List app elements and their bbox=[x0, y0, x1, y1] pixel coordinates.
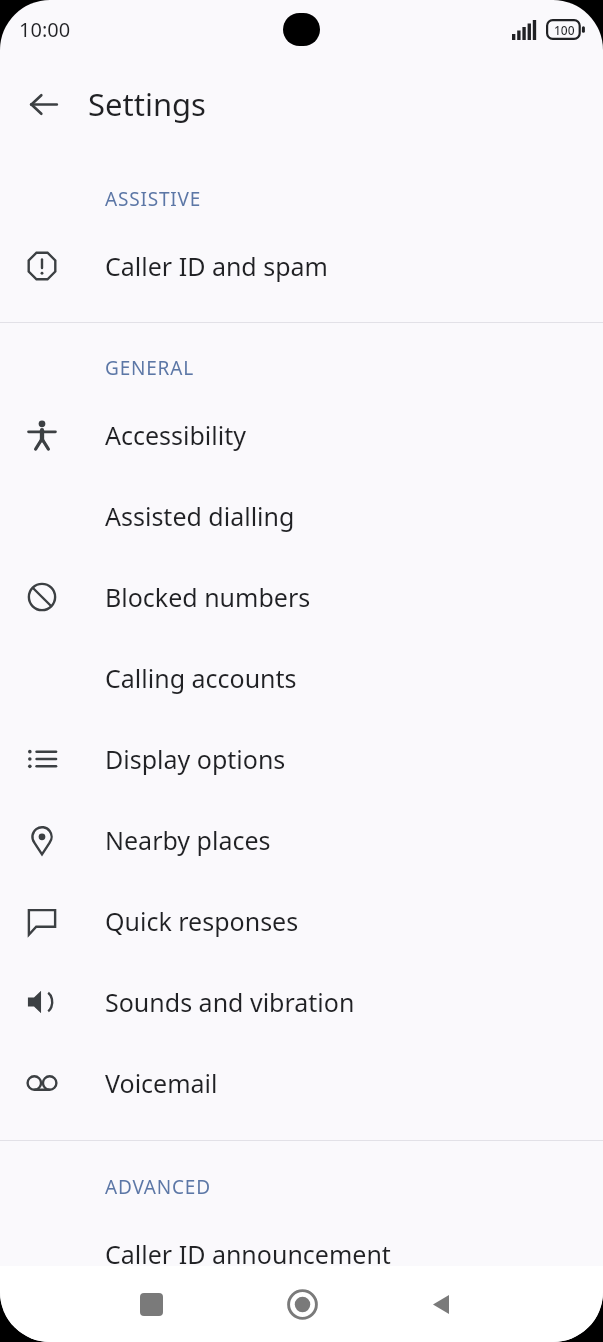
button[interactable]: Assisted dialling bbox=[0, 475, 603, 556]
button[interactable]: Recent apps bbox=[126, 1279, 176, 1329]
staticText: Nearby places bbox=[105, 823, 271, 857]
staticText: Flip to silence bbox=[105, 1277, 264, 1311]
staticText: Sounds and vibration bbox=[105, 985, 355, 1019]
staticText: Assisted dialling bbox=[105, 499, 295, 533]
staticText: Settings bbox=[88, 83, 206, 125]
staticText: Calling accounts bbox=[105, 661, 297, 695]
staticText: Voicemail bbox=[105, 1066, 218, 1100]
staticText: GENERAL bbox=[105, 355, 194, 381]
button[interactable]: Back bbox=[17, 78, 69, 130]
staticText: Blocked numbers bbox=[105, 580, 311, 614]
staticText: ADVANCED bbox=[105, 1174, 211, 1200]
button[interactable]: Calling accounts bbox=[0, 637, 603, 718]
button[interactable]: Blocked numbers bbox=[0, 556, 603, 637]
staticText: Quick responses bbox=[105, 904, 299, 938]
staticText: 10:00 bbox=[19, 16, 71, 43]
staticText: 100 bbox=[554, 22, 575, 38]
staticText: Display options bbox=[105, 742, 286, 776]
staticText: Caller ID and spam bbox=[105, 249, 328, 283]
staticText: Accessibility bbox=[105, 418, 246, 452]
button[interactable]: Quick responses bbox=[0, 880, 603, 961]
staticText: Caller ID announcement bbox=[105, 1237, 391, 1271]
button[interactable]: Sounds and vibration bbox=[0, 961, 603, 1042]
button[interactable]: Nearby places bbox=[0, 799, 603, 880]
button[interactable]: Home bbox=[277, 1279, 327, 1329]
button[interactable]: Voicemail bbox=[0, 1042, 603, 1123]
staticText: ASSISTIVE bbox=[105, 186, 202, 212]
button[interactable]: Caller ID and spam bbox=[0, 225, 603, 306]
button[interactable]: Caller ID announcement bbox=[0, 1213, 603, 1294]
button[interactable]: Display options bbox=[0, 718, 603, 799]
button[interactable]: Back bbox=[416, 1279, 466, 1329]
button[interactable]: Accessibility bbox=[0, 394, 603, 475]
